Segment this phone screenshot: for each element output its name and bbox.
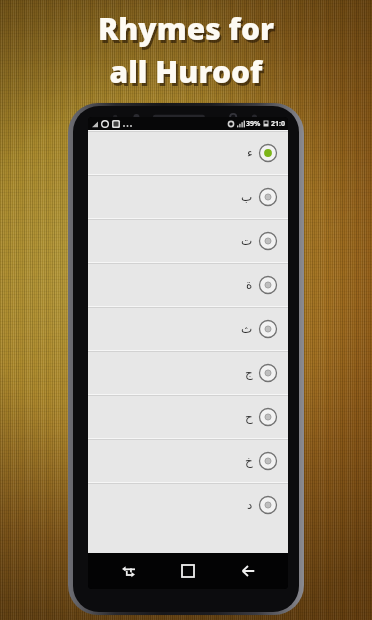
other: Select letter	[258, 495, 278, 515]
staticText: ث	[241, 322, 253, 336]
other: Select letter	[258, 319, 278, 339]
staticText: ح	[245, 410, 253, 424]
button[interactable]: ب	[88, 174, 288, 218]
button[interactable]: ث	[88, 306, 288, 350]
button[interactable]: ج	[88, 350, 288, 394]
staticText: ب	[241, 190, 253, 204]
other: Select letter	[258, 451, 278, 471]
button[interactable]: ح	[88, 394, 288, 438]
staticText: ء	[247, 146, 253, 160]
button[interactable]: Recents	[108, 553, 148, 589]
staticText: ج	[245, 366, 253, 380]
button[interactable]: Home	[168, 553, 208, 589]
other: Select letter	[258, 275, 278, 295]
other: Select letter	[258, 407, 278, 427]
button[interactable]: ة	[88, 262, 288, 306]
other: Select letter	[258, 231, 278, 251]
staticText: all Huroof	[2, 54, 372, 95]
other: Selected letter	[258, 143, 278, 163]
button[interactable]: Back	[228, 553, 268, 589]
staticText: خ	[245, 454, 253, 468]
staticText: ت	[241, 234, 253, 248]
button[interactable]: ت	[88, 218, 288, 262]
staticText: 39%	[246, 119, 261, 129]
staticText: 21:0	[271, 119, 285, 129]
staticText: د	[247, 498, 253, 512]
other: Select letter	[258, 187, 278, 207]
button[interactable]: ء	[88, 130, 288, 174]
other: Select letter	[258, 363, 278, 383]
staticText: all Huroof	[0, 51, 372, 92]
staticText: Rhymes for	[2, 11, 372, 52]
staticText: Rhymes for	[0, 8, 372, 49]
button[interactable]: د	[88, 482, 288, 526]
staticText: ة	[246, 278, 253, 292]
button[interactable]: خ	[88, 438, 288, 482]
